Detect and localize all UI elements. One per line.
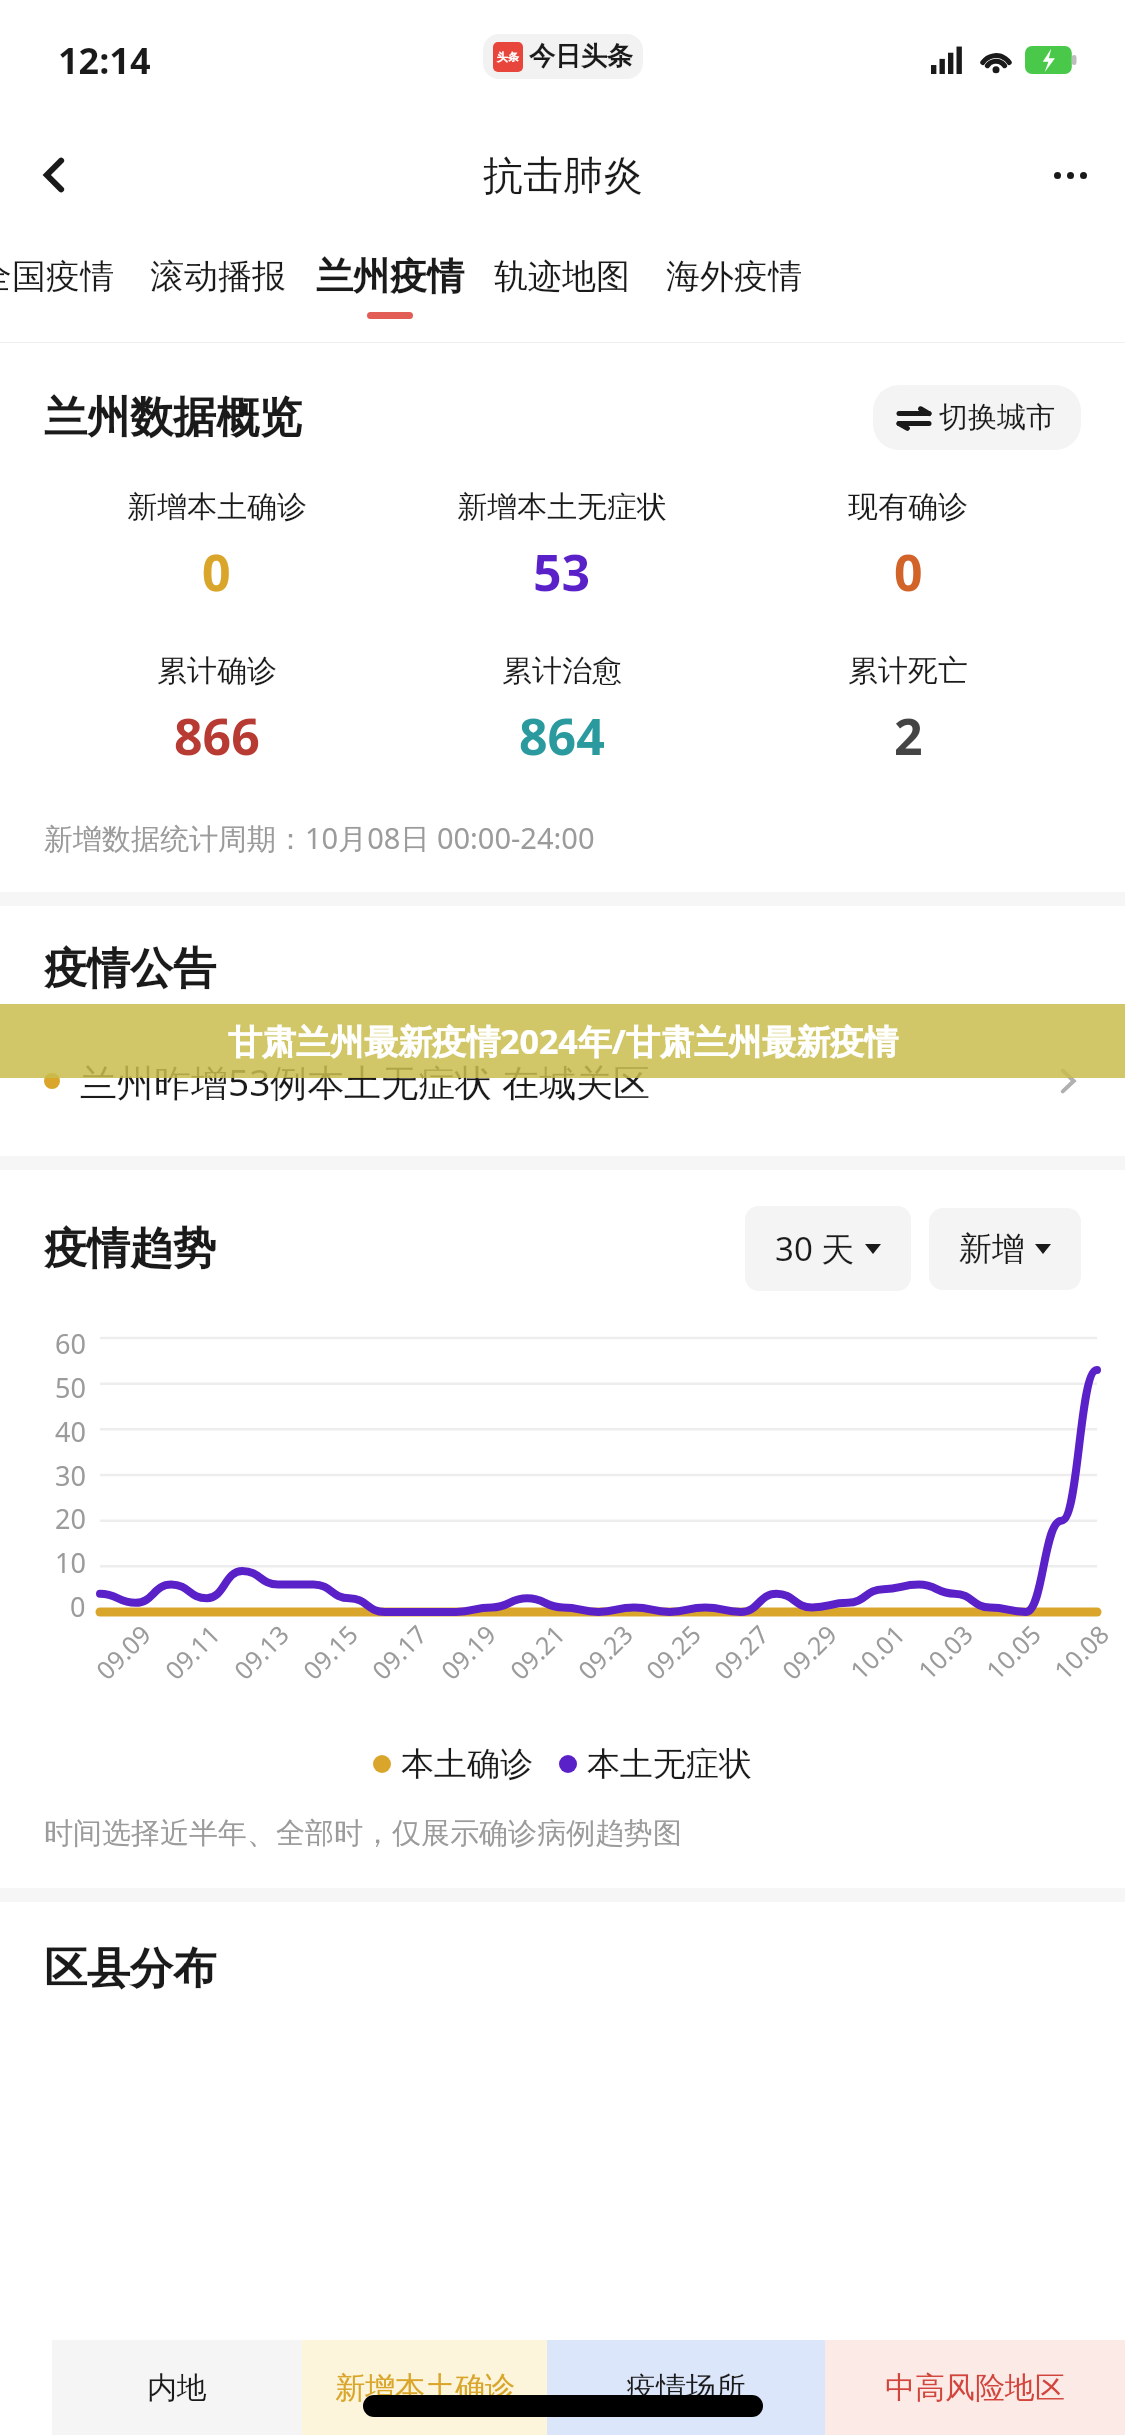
staticText: 兰州数据概览	[44, 391, 302, 445]
button[interactable]: 累计死亡	[735, 652, 1081, 770]
staticText: 0	[202, 538, 231, 606]
staticText: 疫情场所	[626, 2369, 746, 2407]
staticText: 09.23	[570, 1617, 640, 1687]
staticText: 疫情公告	[44, 942, 216, 996]
staticText: 09.11	[157, 1617, 227, 1687]
button[interactable]: Back	[20, 140, 90, 210]
button[interactable]: 新增本土确诊	[44, 488, 389, 606]
button[interactable]: 新增	[929, 1208, 1081, 1290]
staticText: 09.29	[774, 1617, 844, 1687]
staticText: 现有确诊	[848, 488, 968, 526]
staticText: 抗击肺炎	[483, 150, 643, 200]
button[interactable]: 滚动播报	[132, 230, 304, 342]
button[interactable]: 累计确诊	[44, 652, 389, 770]
staticText: 09.25	[638, 1617, 708, 1687]
button[interactable]: 新增本土无症状	[389, 488, 735, 606]
button[interactable]: 轨迹地图	[476, 230, 648, 342]
staticText: 新增本土确诊	[127, 488, 307, 526]
staticText: 甘肃兰州最新疫情2024年/甘肃兰州最新疫情	[228, 1018, 898, 1064]
staticText: 53	[533, 538, 591, 606]
staticText: 新增	[959, 1228, 1025, 1270]
staticText: 09.13	[226, 1617, 296, 1687]
staticText: 40	[55, 1413, 86, 1450]
staticText: 0	[894, 538, 923, 606]
staticText: 本土无症状	[587, 1743, 752, 1785]
staticText: 海外疫情	[666, 255, 802, 298]
button[interactable]: 中高风险地区	[825, 2340, 1125, 2435]
staticText: 2	[894, 702, 923, 770]
staticText: 今日头条	[529, 40, 633, 73]
staticText: 09.19	[433, 1617, 503, 1687]
staticText: 09.21	[502, 1617, 572, 1687]
staticText: 累计治愈	[502, 652, 622, 690]
button[interactable]: 切换城市	[873, 385, 1081, 450]
staticText: 滚动播报	[150, 255, 286, 298]
staticText: 头条	[497, 50, 519, 64]
staticText: 50	[55, 1369, 86, 1406]
staticText: 20	[55, 1500, 86, 1537]
staticText: 本土确诊	[401, 1743, 533, 1785]
staticText: 兰州疫情	[316, 253, 464, 300]
staticText: 10	[55, 1544, 86, 1581]
staticText: 累计死亡	[848, 652, 968, 690]
staticText: 10.01	[842, 1617, 912, 1687]
button[interactable]: 全国疫情	[0, 230, 132, 342]
button[interactable]: 海外疫情	[648, 230, 820, 342]
button[interactable]: 兰州昨增53例本土无症状 在城关区	[0, 1026, 1125, 1136]
staticText: 切换城市	[939, 399, 1055, 436]
staticText: 新增本土确诊	[335, 2369, 515, 2407]
button[interactable]: 30 天	[745, 1206, 911, 1291]
staticText: 09.15	[295, 1617, 365, 1687]
staticText: 0	[70, 1588, 86, 1625]
staticText: 中高风险地区	[885, 2369, 1065, 2407]
staticText: 疫情趋势	[44, 1222, 216, 1276]
staticText: 10.05	[978, 1617, 1048, 1687]
button[interactable]: 疫情场所	[547, 2340, 825, 2435]
staticText: 时间选择近半年、全部时，仅展示确诊病例趋势图	[44, 1815, 682, 1852]
staticText: 30 天	[775, 1226, 855, 1271]
button[interactable]: 兰州疫情	[304, 230, 476, 342]
staticText: 864	[519, 702, 605, 770]
staticText: 区县分布	[44, 1942, 216, 1996]
staticText: 兰州昨增53例本土无症状 在城关区	[80, 1056, 650, 1107]
button[interactable]: More options	[1035, 140, 1105, 210]
staticText: 09.17	[364, 1617, 434, 1687]
staticText: 30	[55, 1457, 86, 1494]
staticText: 内地	[147, 2369, 207, 2407]
staticText: 866	[174, 702, 260, 770]
staticText: 09.27	[706, 1617, 776, 1687]
button[interactable]: 内地	[52, 2340, 302, 2435]
staticText: 全国疫情	[0, 255, 114, 298]
staticText: 60	[55, 1325, 86, 1362]
staticText: 轨迹地图	[494, 255, 630, 298]
staticText: 累计确诊	[157, 652, 277, 690]
staticText: 新增本土无症状	[457, 488, 667, 526]
staticText: 10.03	[910, 1617, 980, 1687]
staticText: 09.09	[88, 1617, 158, 1687]
staticText: 10.08	[1046, 1617, 1116, 1687]
button[interactable]: 累计治愈	[389, 652, 735, 770]
button[interactable]: 现有确诊	[735, 488, 1081, 606]
button[interactable]: 新增本土确诊	[302, 2340, 547, 2435]
staticText: 新增数据统计周期：10月08日 00:00-24:00	[44, 818, 595, 858]
staticText: 12:14	[58, 36, 151, 85]
